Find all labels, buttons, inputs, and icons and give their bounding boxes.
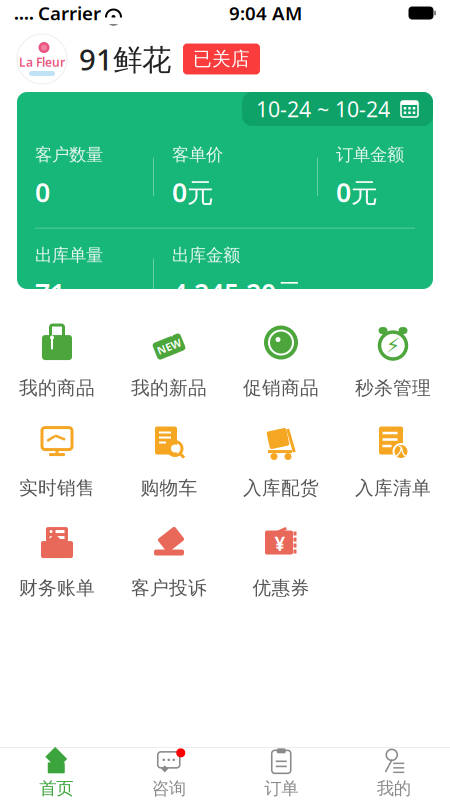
button[interactable]: 10-24 ~ 10-24: [242, 92, 433, 126]
staticText: 咨询: [152, 778, 186, 799]
staticText: 客单价: [172, 144, 223, 165]
button[interactable]: 购物车: [113, 411, 225, 511]
button[interactable]: ⚡︎: [337, 311, 449, 411]
button[interactable]: 首页: [0, 748, 112, 800]
button[interactable]: 入库配货: [225, 411, 337, 511]
button[interactable]: 客户投诉: [113, 511, 225, 611]
staticText: 91鲜花: [79, 39, 171, 78]
staticText: 入库配货: [243, 476, 319, 499]
staticText: 出库金额: [172, 245, 240, 266]
staticText: NEW: [156, 339, 181, 354]
staticText: 订单: [264, 778, 298, 799]
staticText: 71: [35, 275, 65, 310]
staticText: 0元: [336, 174, 378, 210]
staticText: 已关店: [193, 47, 250, 70]
staticText: 实时销售: [19, 476, 95, 499]
staticText: ¥: [274, 531, 285, 556]
staticText: 首页: [39, 778, 73, 799]
button[interactable]: NEW: [113, 311, 225, 411]
staticText: 0: [35, 174, 50, 210]
button[interactable]: 订单: [225, 748, 337, 800]
staticText: 9:04 AM: [229, 1, 302, 25]
button[interactable]: 咨询: [112, 748, 225, 800]
button[interactable]: 已关店: [183, 43, 260, 74]
staticText: 入: [395, 445, 406, 458]
button[interactable]: ¥: [225, 511, 337, 611]
staticText: 4,245.20元: [172, 275, 303, 310]
staticText: Carrier: [38, 1, 101, 25]
staticText: La Fleur: [19, 54, 65, 70]
staticText: 促销商品: [243, 376, 319, 399]
staticText: 出库单量: [35, 245, 103, 266]
button[interactable]: 入: [337, 411, 449, 511]
staticText: 我的商品: [19, 376, 95, 399]
staticText: 购物车: [140, 476, 197, 499]
staticText: 我的新品: [131, 376, 207, 399]
staticText: 订单金额: [336, 144, 404, 165]
staticText: 入库清单: [355, 476, 431, 499]
staticText: 10-24 ~ 10-24: [256, 95, 390, 123]
staticText: 0元: [172, 174, 214, 210]
staticText: 客户数量: [35, 144, 103, 165]
button[interactable]: 我的: [337, 748, 450, 800]
staticText: 我的: [377, 778, 411, 799]
button[interactable]: 促销商品: [225, 311, 337, 411]
staticText: ....: [14, 1, 34, 24]
staticText: 财务账单: [19, 576, 95, 599]
staticText: 秒杀管理: [355, 376, 431, 399]
button[interactable]: 实时销售: [1, 411, 113, 511]
staticText: 客户投诉: [131, 576, 207, 599]
button[interactable]: 财务账单: [1, 511, 113, 611]
button[interactable]: 我的商品: [1, 311, 113, 411]
staticText: 优惠券: [252, 576, 309, 599]
staticText: ⚡︎: [386, 334, 400, 357]
